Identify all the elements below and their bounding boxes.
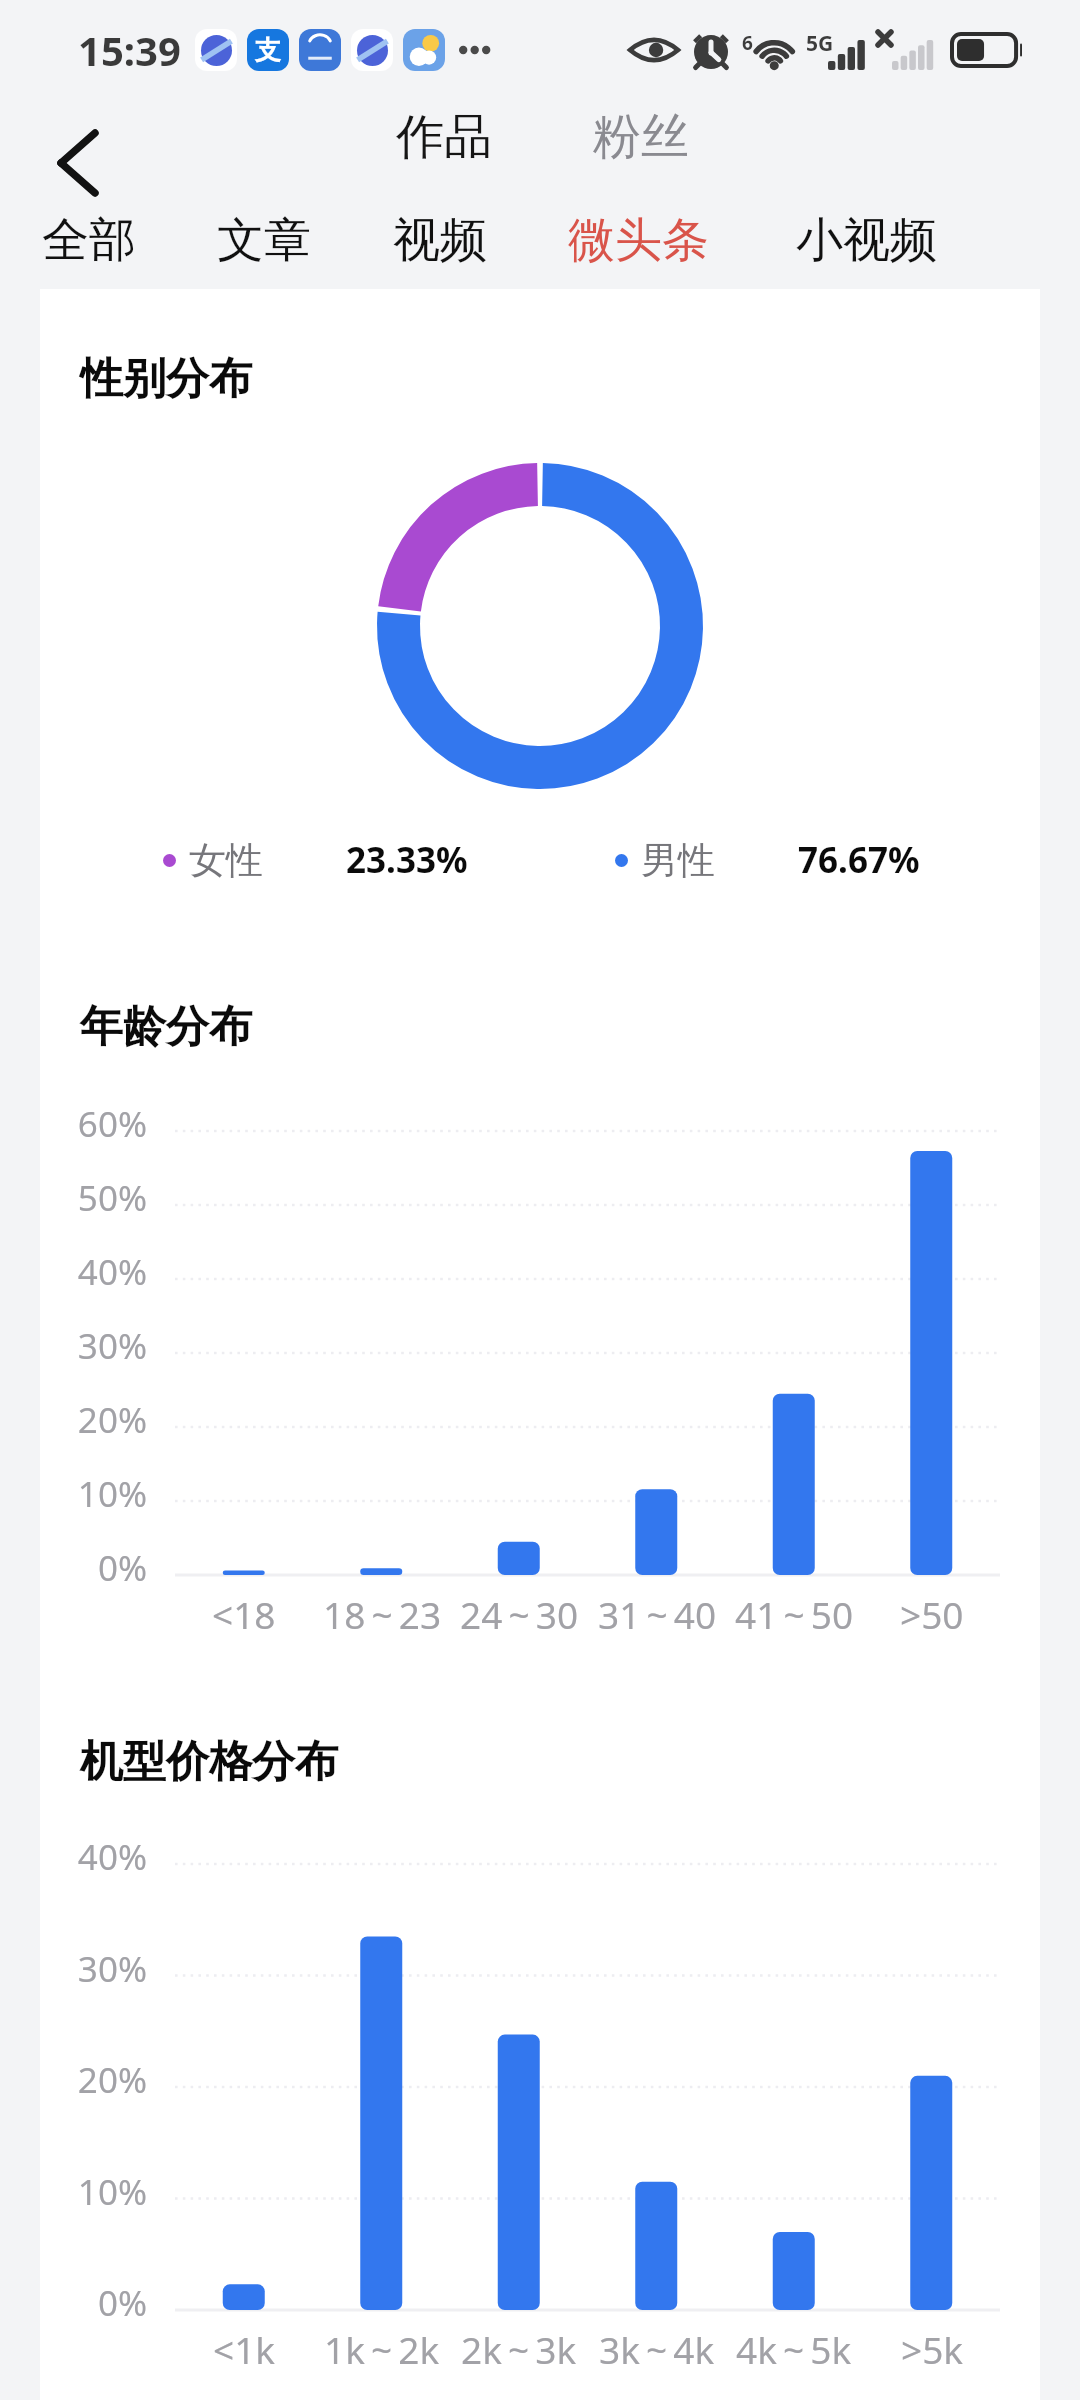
staticText: 粉丝 (593, 107, 689, 167)
staticText: 作品 (396, 107, 492, 167)
staticText: 40% (40, 1248, 147, 1296)
staticText: 年龄分布 (80, 1000, 252, 1054)
staticText: 视频 (393, 211, 487, 270)
staticText: >5k (901, 2324, 964, 2374)
staticText: 性别分布 (80, 352, 252, 406)
staticText: 女性 (189, 837, 263, 884)
staticText: 0% (40, 2279, 147, 2327)
staticText: 18 ~ 23 (323, 1589, 442, 1639)
button[interactable]: 全部 (28, 202, 150, 278)
staticText: 4k ~ 5k (736, 2324, 852, 2374)
staticText: 2k ~ 3k (461, 2324, 577, 2374)
staticText: 5G (806, 29, 834, 58)
staticText: 40% (40, 1833, 147, 1881)
staticText: <18 (212, 1589, 276, 1639)
staticText: 20% (40, 1396, 147, 1444)
staticText: 男性 (641, 837, 715, 884)
button[interactable]: 女性 (163, 827, 468, 893)
button[interactable]: 粉丝 (582, 99, 700, 175)
staticText: 微头条 (568, 211, 709, 270)
staticText: 10% (40, 1470, 147, 1518)
button[interactable]: 作品 (385, 99, 503, 175)
staticText: 15:39 (78, 23, 181, 77)
staticText: 小视频 (796, 211, 937, 270)
button[interactable]: 男性 (615, 827, 920, 893)
staticText: 60% (40, 1100, 147, 1148)
staticText: 30% (40, 1322, 147, 1370)
staticText: 1k ~ 2k (324, 2324, 440, 2374)
staticText: 30% (40, 1945, 147, 1993)
staticText: 20% (40, 2056, 147, 2104)
staticText: >50 (900, 1589, 964, 1639)
button[interactable]: Back (34, 119, 122, 207)
button[interactable]: 文章 (203, 202, 325, 278)
button[interactable]: 视频 (379, 202, 501, 278)
staticText: 10% (40, 2168, 147, 2216)
staticText: 文章 (217, 211, 311, 270)
staticText: 3k ~ 4k (599, 2324, 715, 2374)
staticText: 24 ~ 30 (460, 1589, 579, 1639)
button[interactable]: 微头条 (554, 202, 722, 278)
staticText: 全部 (42, 211, 136, 270)
staticText: 支 (255, 34, 281, 67)
staticText: 50% (40, 1174, 147, 1222)
staticText: 6 (742, 30, 753, 56)
staticText: 41 ~ 50 (735, 1589, 854, 1639)
staticText: 0% (40, 1544, 147, 1592)
staticText: 23.33% (346, 836, 468, 884)
staticText: 76.67% (798, 836, 920, 884)
staticText: 31 ~ 40 (598, 1589, 717, 1639)
button[interactable]: 小视频 (782, 202, 950, 278)
staticText: <1k (213, 2324, 276, 2374)
staticText: 机型价格分布 (80, 1735, 338, 1789)
